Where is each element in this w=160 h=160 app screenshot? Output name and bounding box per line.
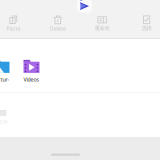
button[interactable]: Videos <box>23 59 39 81</box>
staticText: 选择 <box>141 25 151 32</box>
staticText: 文件 <box>0 119 8 126</box>
staticText: Videos <box>23 76 39 83</box>
button[interactable]: 选择 <box>133 0 160 39</box>
staticText: Pictures <box>0 76 9 90</box>
staticText: Paste <box>6 25 20 32</box>
staticText: Delete <box>50 25 66 32</box>
button[interactable]: 重命名 <box>89 0 116 39</box>
button[interactable]: Paste <box>0 0 27 39</box>
button[interactable]: Delete <box>44 0 71 39</box>
staticText: 重命名 <box>95 25 110 32</box>
button[interactable]: Pictures <box>0 59 9 81</box>
